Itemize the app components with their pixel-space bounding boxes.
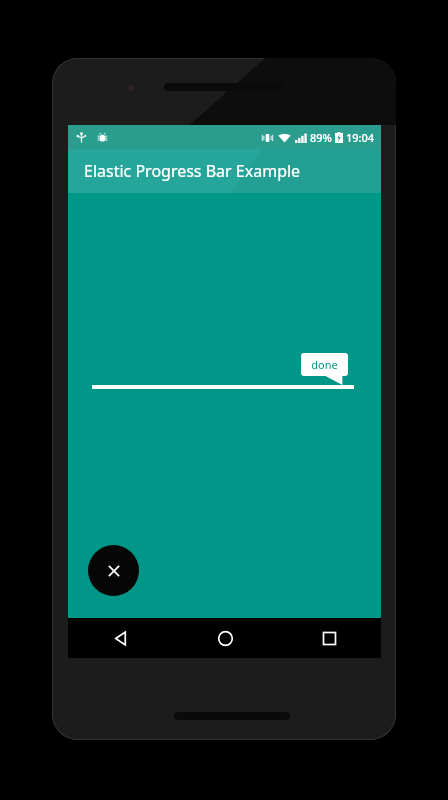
button[interactable]: Home	[173, 618, 277, 658]
button[interactable]: Back	[68, 618, 173, 658]
staticText: Elastic Progress Bar Example	[84, 160, 301, 182]
button[interactable]: Recent apps	[277, 618, 381, 658]
button[interactable]: Cancel	[88, 545, 139, 596]
staticText: done	[311, 357, 338, 372]
staticText: 19:04	[346, 130, 375, 145]
staticText: 89%	[310, 130, 332, 145]
button[interactable]: Elastic Progress Bar Example	[68, 149, 381, 193]
